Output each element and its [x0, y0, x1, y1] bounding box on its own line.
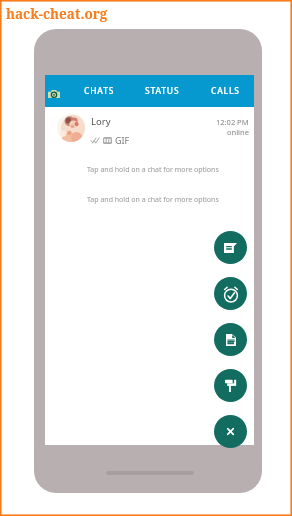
staticText: CHATS [84, 85, 115, 97]
button[interactable]: New chat [214, 231, 247, 264]
button[interactable]: STATUS [139, 75, 185, 107]
button[interactable]: CALLS [202, 75, 248, 107]
staticText: CALLS [211, 85, 240, 97]
button[interactable]: Document [214, 323, 247, 356]
button[interactable]: CHATS [76, 75, 122, 107]
staticText: GIF [115, 134, 130, 146]
staticText: Lory [91, 115, 111, 128]
button[interactable]: Close [214, 415, 247, 448]
staticText: STATUS [145, 85, 180, 97]
button[interactable]: Wallpaper [214, 369, 247, 402]
button[interactable]: Scheduled [214, 277, 247, 310]
staticText: Tap and hold on a chat for more options [87, 195, 219, 205]
staticText: hack-cheat.org [6, 5, 108, 23]
staticText: Tap and hold on a chat for more options [87, 165, 219, 175]
staticText: 12:02 PM [216, 117, 249, 127]
staticText: online [227, 127, 249, 137]
button[interactable]: Camera [45, 86, 63, 102]
